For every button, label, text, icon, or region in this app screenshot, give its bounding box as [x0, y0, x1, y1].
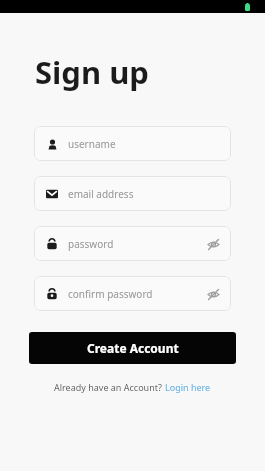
button[interactable]: email address: [34, 176, 231, 211]
button[interactable]: Create Account: [29, 332, 236, 364]
staticText: email address: [68, 187, 220, 201]
staticText: username: [68, 137, 220, 151]
staticText: Already have an Account?: [54, 381, 165, 393]
staticText: Sign up: [35, 51, 149, 93]
staticText: Login here: [165, 381, 211, 393]
button[interactable]: username: [34, 126, 231, 161]
button[interactable]: Toggle password visibility: [206, 237, 220, 251]
button[interactable]: Login here: [165, 381, 211, 393]
staticText: password: [68, 237, 206, 251]
button[interactable]: Toggle password visibility: [206, 287, 220, 301]
staticText: confirm password: [68, 287, 206, 301]
button[interactable]: password: [34, 226, 231, 261]
button[interactable]: confirm password: [34, 276, 231, 311]
staticText: Create Account: [87, 340, 179, 356]
